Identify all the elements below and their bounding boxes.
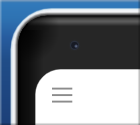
button[interactable]: Phone photo card [0,0,140,125]
